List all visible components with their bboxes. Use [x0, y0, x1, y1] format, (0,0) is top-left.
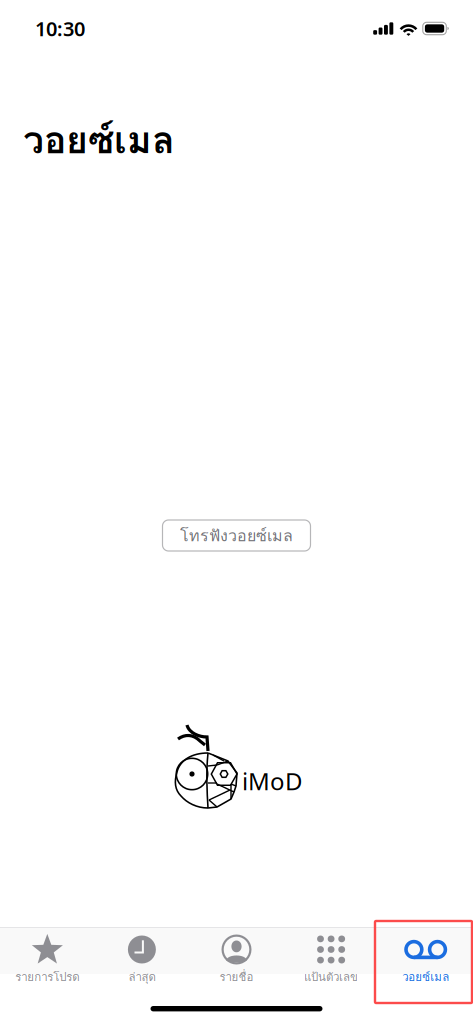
button[interactable]: รายการโปรด	[0, 927, 95, 974]
button[interactable]: วอยซ์เมล	[378, 927, 473, 974]
staticText: iMoD	[242, 765, 303, 797]
staticText: แป้นตัวเลข	[304, 968, 358, 986]
staticText: วอยซ์เมล	[402, 968, 449, 986]
button[interactable]: รายชื่อ	[189, 927, 284, 974]
staticText: โทรฟังวอยซ์เมล	[180, 523, 293, 548]
staticText: ล่าสุด	[128, 968, 155, 986]
button[interactable]: ล่าสุด	[95, 927, 189, 974]
staticText: รายชื่อ	[219, 968, 253, 986]
staticText: 10:30	[35, 15, 85, 42]
staticText: วอยซ์เมล	[23, 111, 175, 169]
button[interactable]: แป้นตัวเลข	[284, 927, 378, 974]
staticText: รายการโปรด	[15, 968, 79, 986]
button[interactable]: โทรฟังวอยซ์เมล	[162, 520, 310, 551]
